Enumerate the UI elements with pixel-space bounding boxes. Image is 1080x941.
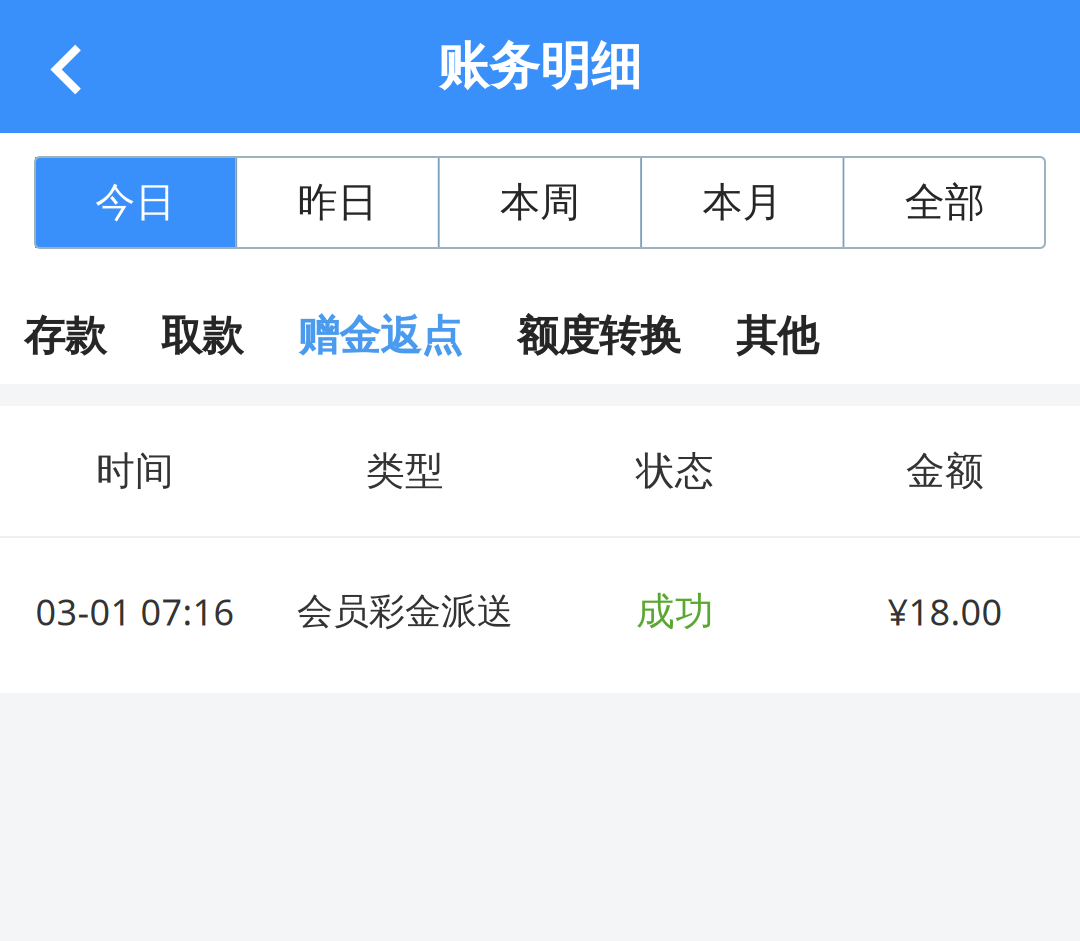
button[interactable]: 本周 (440, 157, 640, 248)
staticText: ¥18.00 (887, 588, 1002, 635)
button[interactable]: 本月 (642, 157, 843, 248)
staticText: 取款 (161, 311, 243, 361)
staticText: 额度转换 (517, 311, 681, 361)
button[interactable]: 今日 (35, 157, 235, 248)
button[interactable]: 昨日 (237, 157, 438, 248)
staticText: 状态 (636, 447, 714, 495)
staticText: 账务明细 (438, 35, 642, 98)
staticText: 时间 (96, 447, 174, 495)
button[interactable]: 03-01 07:16 (0, 538, 1080, 693)
button[interactable]: 额度转换 (517, 311, 681, 361)
staticText: 会员彩金派送 (297, 589, 513, 634)
button[interactable]: 取款 (161, 311, 243, 361)
staticText: 存款 (24, 311, 106, 361)
staticText: 本周 (500, 178, 580, 227)
staticText: 03-01 07:16 (35, 588, 234, 635)
staticText: 金额 (906, 447, 984, 495)
button[interactable]: 全部 (845, 157, 1045, 248)
button[interactable]: Back (26, 21, 104, 111)
staticText: 其他 (736, 311, 818, 361)
button[interactable]: 赠金返点 (298, 311, 462, 361)
button[interactable]: 存款 (24, 311, 106, 361)
staticText: 昨日 (298, 178, 378, 227)
staticText: 赠金返点 (298, 311, 462, 361)
staticText: 全部 (905, 178, 985, 227)
staticText: 本月 (702, 178, 782, 227)
staticText: 今日 (95, 178, 175, 227)
staticText: 类型 (366, 447, 444, 495)
staticText: 成功 (636, 588, 714, 635)
button[interactable]: 其他 (736, 311, 818, 361)
